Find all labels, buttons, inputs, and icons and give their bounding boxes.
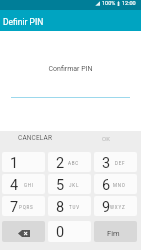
staticText: 4 — [10, 177, 19, 194]
button[interactable]: Fim — [94, 221, 137, 242]
staticText: PQRS — [19, 205, 34, 210]
button[interactable]: 7 — [2, 196, 45, 216]
staticText: GHI — [24, 183, 34, 188]
button[interactable]: 2 — [48, 152, 91, 172]
staticText: 1 — [10, 155, 19, 172]
button[interactable]: OK — [70, 131, 141, 145]
staticText: MNO — [113, 183, 126, 188]
staticText: TUV — [69, 205, 80, 210]
staticText: 2 — [56, 155, 65, 172]
staticText: WXYZ — [110, 205, 126, 210]
staticText: JKL — [69, 183, 80, 188]
staticText: ABC — [68, 161, 80, 166]
staticText: 3 — [102, 155, 111, 172]
staticText: OK — [102, 135, 110, 142]
staticText: 5 — [56, 177, 65, 194]
button[interactable]: 3 — [94, 152, 137, 172]
button[interactable]: 8 — [48, 196, 91, 216]
staticText: Confirmar PIN — [0, 65, 141, 73]
button[interactable]: 6 — [94, 174, 137, 194]
staticText: 8 — [56, 199, 65, 216]
staticText: 9 — [102, 199, 111, 216]
button[interactable]: 0 — [48, 221, 91, 242]
staticText: 0 — [56, 224, 65, 241]
staticText: 12:00 — [122, 0, 136, 6]
staticText: DEF — [115, 161, 126, 166]
button[interactable]: Definir PIN — [0, 10, 141, 31]
button[interactable]: 1 — [2, 152, 45, 172]
staticText: 7 — [10, 199, 19, 216]
button[interactable]: 9 — [94, 196, 137, 216]
button[interactable]: Backspace — [2, 221, 45, 242]
button[interactable]: 5 — [48, 174, 91, 194]
staticText: CANCELAR — [18, 134, 53, 142]
staticText: 100% — [102, 0, 116, 6]
button[interactable]: 4 — [2, 174, 45, 194]
staticText: Definir PIN — [3, 17, 44, 27]
button[interactable]: CANCELAR — [0, 131, 70, 145]
staticText: Fim — [107, 229, 120, 238]
staticText: 6 — [102, 177, 111, 194]
